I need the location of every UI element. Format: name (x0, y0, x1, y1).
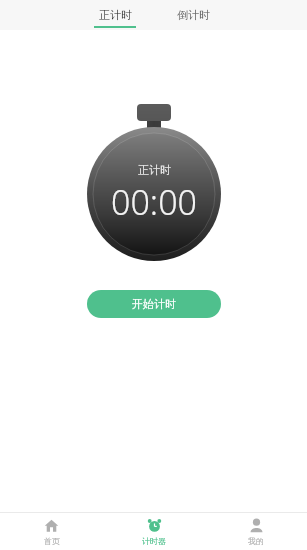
button[interactable]: 首页 (0, 513, 103, 550)
staticText: 正计时 (138, 163, 171, 177)
button[interactable]: 倒计时 (166, 3, 220, 28)
button[interactable]: 开始计时 (87, 290, 221, 318)
staticText: 正计时 (99, 8, 132, 22)
button[interactable]: 我的 (205, 513, 307, 550)
staticText: 开始计时 (132, 297, 176, 311)
button[interactable]: 正计时 (88, 3, 142, 28)
staticText: 计时器 (142, 536, 166, 546)
staticText: 00:00 (111, 179, 197, 225)
button[interactable]: 计时器 (103, 513, 205, 550)
staticText: 倒计时 (177, 8, 210, 22)
staticText: 我的 (248, 536, 264, 546)
staticText: 首页 (44, 536, 60, 546)
